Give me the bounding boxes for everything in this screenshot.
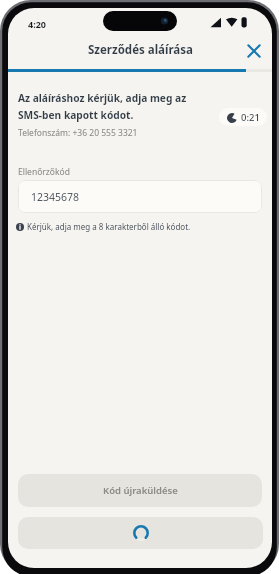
staticText: Telefonszám: +36 20 555 3321 — [18, 127, 138, 139]
staticText: Szerződés aláírása — [88, 42, 193, 58]
staticText: Ellenőrzőkód — [18, 166, 70, 178]
staticText: 4:20 — [28, 18, 46, 30]
button[interactable] — [18, 517, 263, 549]
staticText: Kérjük, adja meg a 8 karakterből álló kó… — [27, 221, 191, 232]
button[interactable]: Kód újraküldése — [18, 474, 262, 507]
staticText: Kód újraküldése — [103, 484, 178, 497]
button[interactable]: 12345678 — [18, 180, 262, 213]
staticText: 12345678 — [31, 190, 80, 204]
staticText: Az aláíráshoz kérjük, adja meg az SMS-be… — [18, 91, 223, 122]
staticText: 0:21 — [241, 111, 260, 124]
button[interactable] — [244, 41, 264, 61]
